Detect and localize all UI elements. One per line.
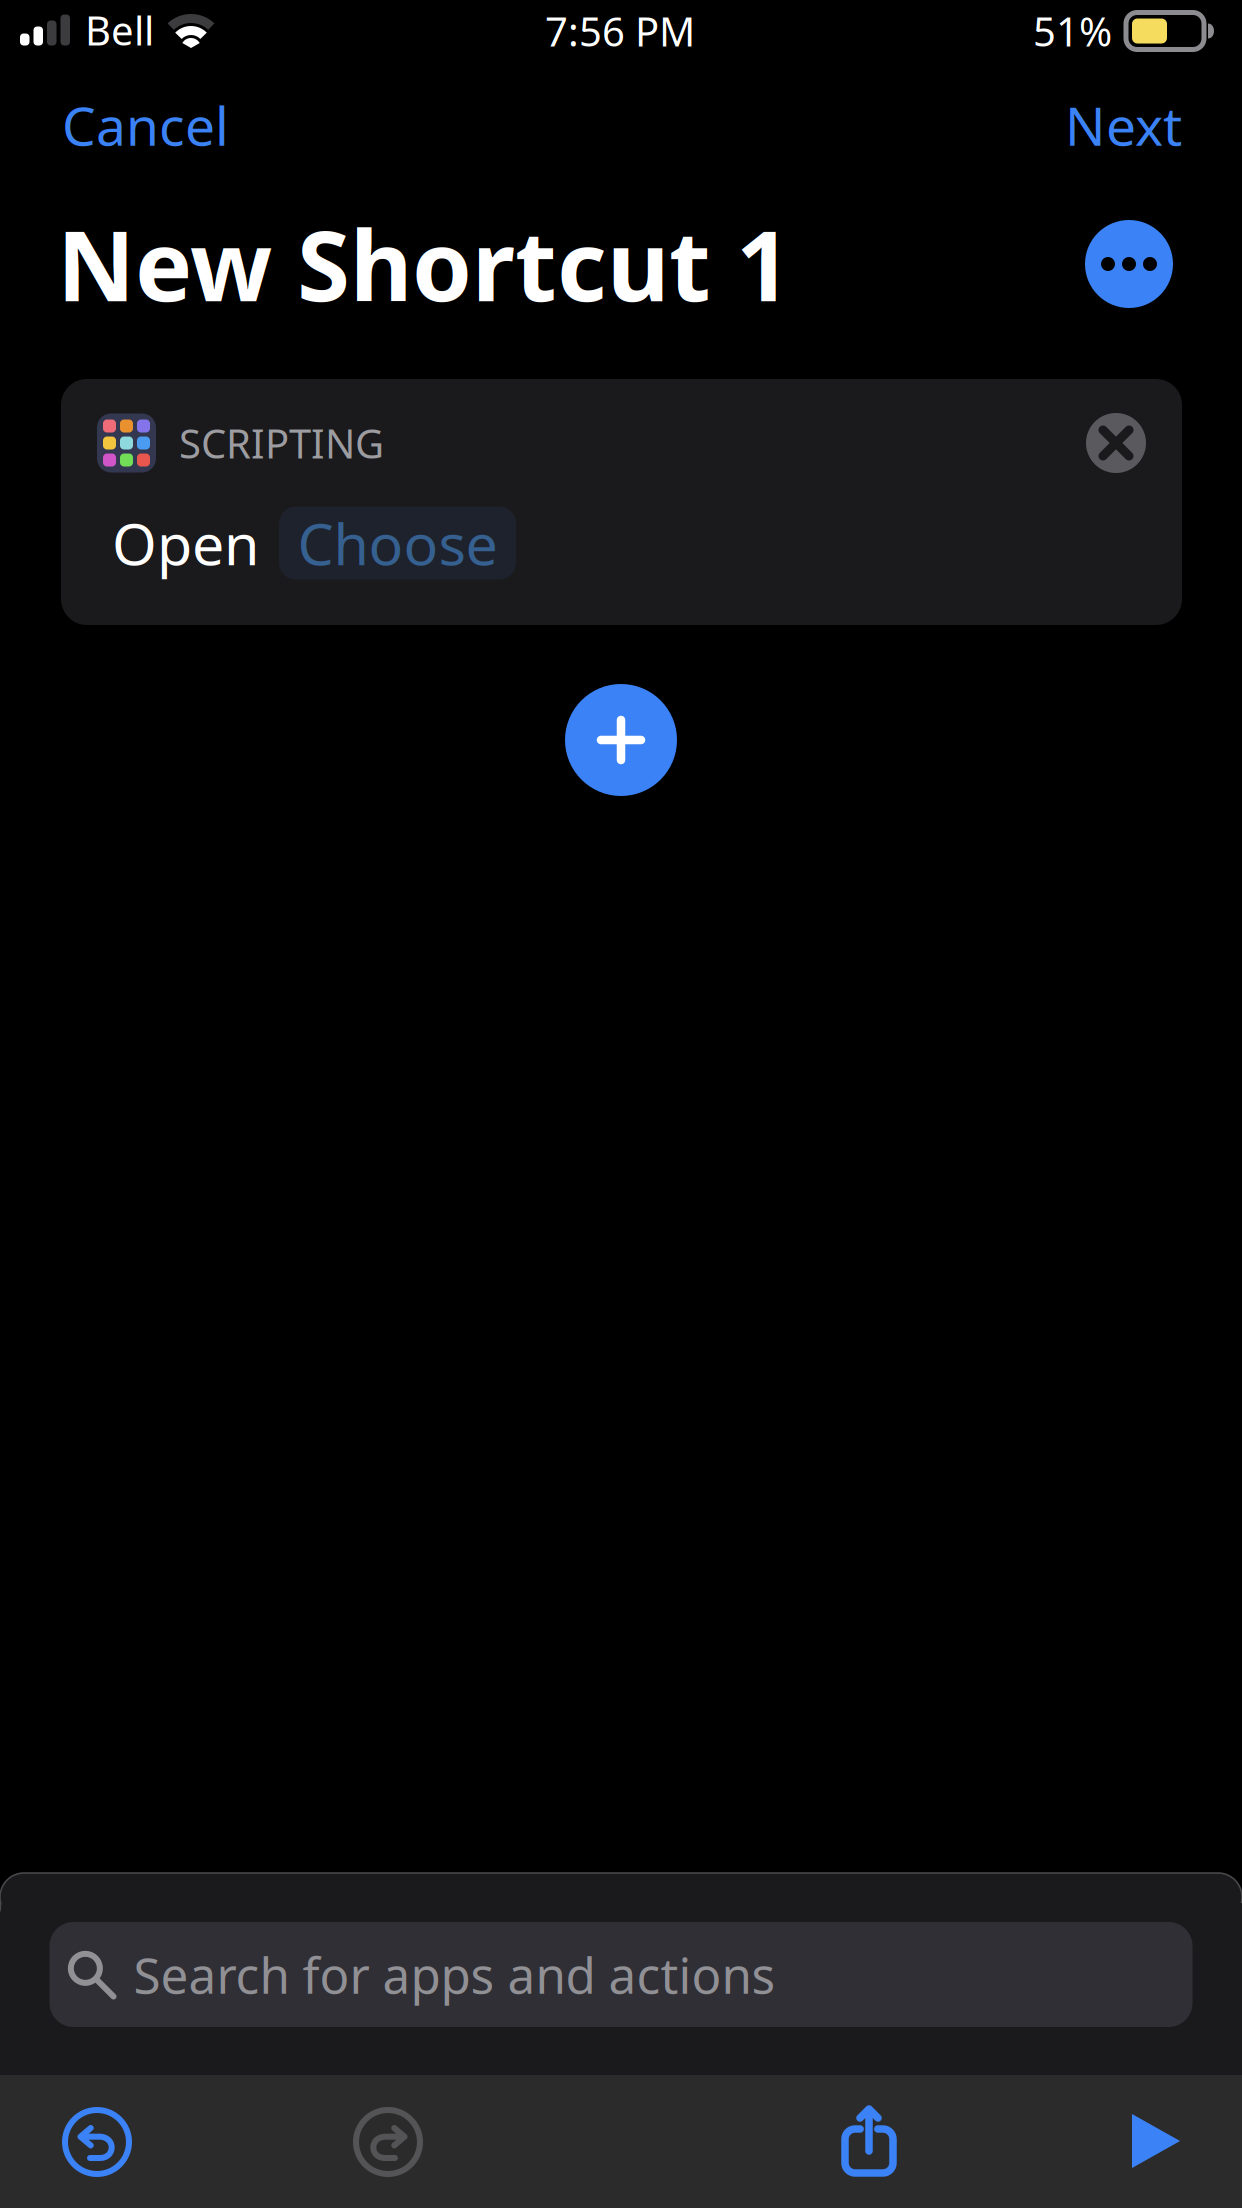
button[interactable]: Search for apps and actions — [49, 1922, 1192, 2027]
staticText: Cancel — [62, 90, 229, 160]
staticText: SCRIPTING — [179, 416, 384, 469]
button[interactable]: More options — [1074, 209, 1184, 319]
staticText: Search for apps and actions — [133, 1942, 775, 2007]
button[interactable]: Add action — [555, 674, 687, 806]
staticText: New Shortcut 1 — [57, 200, 791, 328]
button[interactable]: Undo — [42, 2087, 152, 2197]
staticText: Open — [112, 505, 259, 581]
staticText: Choose — [297, 505, 497, 581]
staticText: Next — [1065, 90, 1182, 160]
staticText: Bell — [85, 3, 154, 56]
staticText: 51% — [1033, 4, 1112, 57]
button[interactable]: Remove action — [1074, 401, 1158, 485]
button[interactable]: Share — [814, 2085, 924, 2195]
staticText: 7:56 PM — [545, 4, 695, 57]
button[interactable]: Redo — [333, 2087, 443, 2197]
button[interactable]: Next — [932, 77, 1182, 173]
button[interactable]: Run shortcut — [1101, 2086, 1211, 2196]
button[interactable]: Cancel — [62, 77, 312, 173]
button[interactable]: Choose — [279, 506, 516, 579]
